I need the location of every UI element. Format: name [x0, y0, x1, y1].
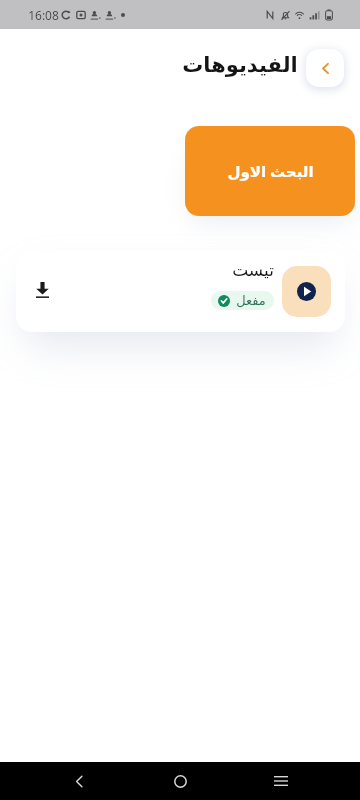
button[interactable]: Download	[25, 272, 60, 307]
button[interactable]: البحث الاول	[185, 126, 355, 216]
staticText: مفعل	[236, 293, 266, 308]
button[interactable]: Download	[16, 251, 345, 332]
button[interactable]: Back	[306, 49, 344, 87]
button[interactable]: Play	[282, 266, 331, 317]
staticText: البحث الاول	[227, 161, 314, 181]
staticText: 16:08	[28, 7, 59, 23]
button[interactable]: Recent apps	[259, 762, 303, 800]
staticText: تيست	[232, 260, 274, 280]
button[interactable]: Back	[57, 762, 101, 800]
staticText: الفيديوهات	[182, 53, 298, 77]
button[interactable]: Home	[158, 762, 202, 800]
